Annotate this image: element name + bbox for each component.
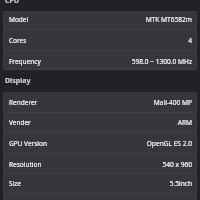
staticText: ARM — [177, 118, 192, 127]
staticText: Display — [5, 76, 31, 86]
staticText: Cores — [9, 36, 27, 45]
staticText: Frequency — [9, 57, 41, 66]
staticText: Renderer — [9, 98, 38, 107]
staticText: 540 x 960 — [162, 160, 192, 169]
button[interactable]: Cores — [3, 29, 197, 50]
staticText: Mali-400 MP — [153, 98, 192, 107]
button[interactable]: Size — [3, 173, 197, 193]
button[interactable]: Vender — [3, 112, 197, 132]
button[interactable]: GPU Version — [3, 132, 197, 153]
staticText: CPU — [5, 0, 20, 6]
button[interactable]: Model — [3, 8, 197, 29]
staticText: 4 — [188, 36, 192, 45]
staticText: Model — [9, 15, 29, 24]
staticText: Resolution — [9, 160, 42, 169]
button[interactable]: Renderer — [3, 92, 197, 112]
staticText: OpenGL ES 2.0 — [146, 139, 192, 148]
staticText: GPU Version — [9, 139, 47, 148]
staticText: 598.0 ~ 1300.0 MHz — [131, 57, 192, 66]
button[interactable]: Resolution — [3, 153, 197, 174]
staticText: MTK MT6582m — [145, 15, 192, 24]
staticText: Size — [9, 179, 21, 188]
staticText: 5.5inch — [169, 179, 192, 188]
staticText: Vender — [9, 118, 31, 127]
button[interactable]: Frequency — [3, 50, 197, 71]
